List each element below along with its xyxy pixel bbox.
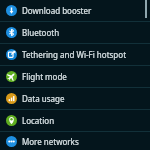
button[interactable]: Location	[0, 110, 150, 131]
button[interactable]: Flight mode	[0, 66, 150, 87]
staticText: Location	[22, 115, 55, 126]
button[interactable]: More networks	[0, 132, 150, 150]
staticText: Download booster	[22, 5, 92, 16]
button[interactable]: Data usage	[0, 88, 150, 109]
staticText: Tethering and Wi-Fi hotspot	[22, 49, 127, 60]
staticText: More networks	[22, 136, 79, 147]
button[interactable]: Download booster	[0, 0, 150, 21]
staticText: Flight mode	[22, 71, 67, 82]
staticText: Bluetooth	[22, 27, 60, 38]
button[interactable]: Bluetooth	[0, 22, 150, 43]
staticText: Data usage	[22, 93, 65, 104]
button[interactable]: Tethering and Wi-Fi hotspot	[0, 44, 150, 65]
